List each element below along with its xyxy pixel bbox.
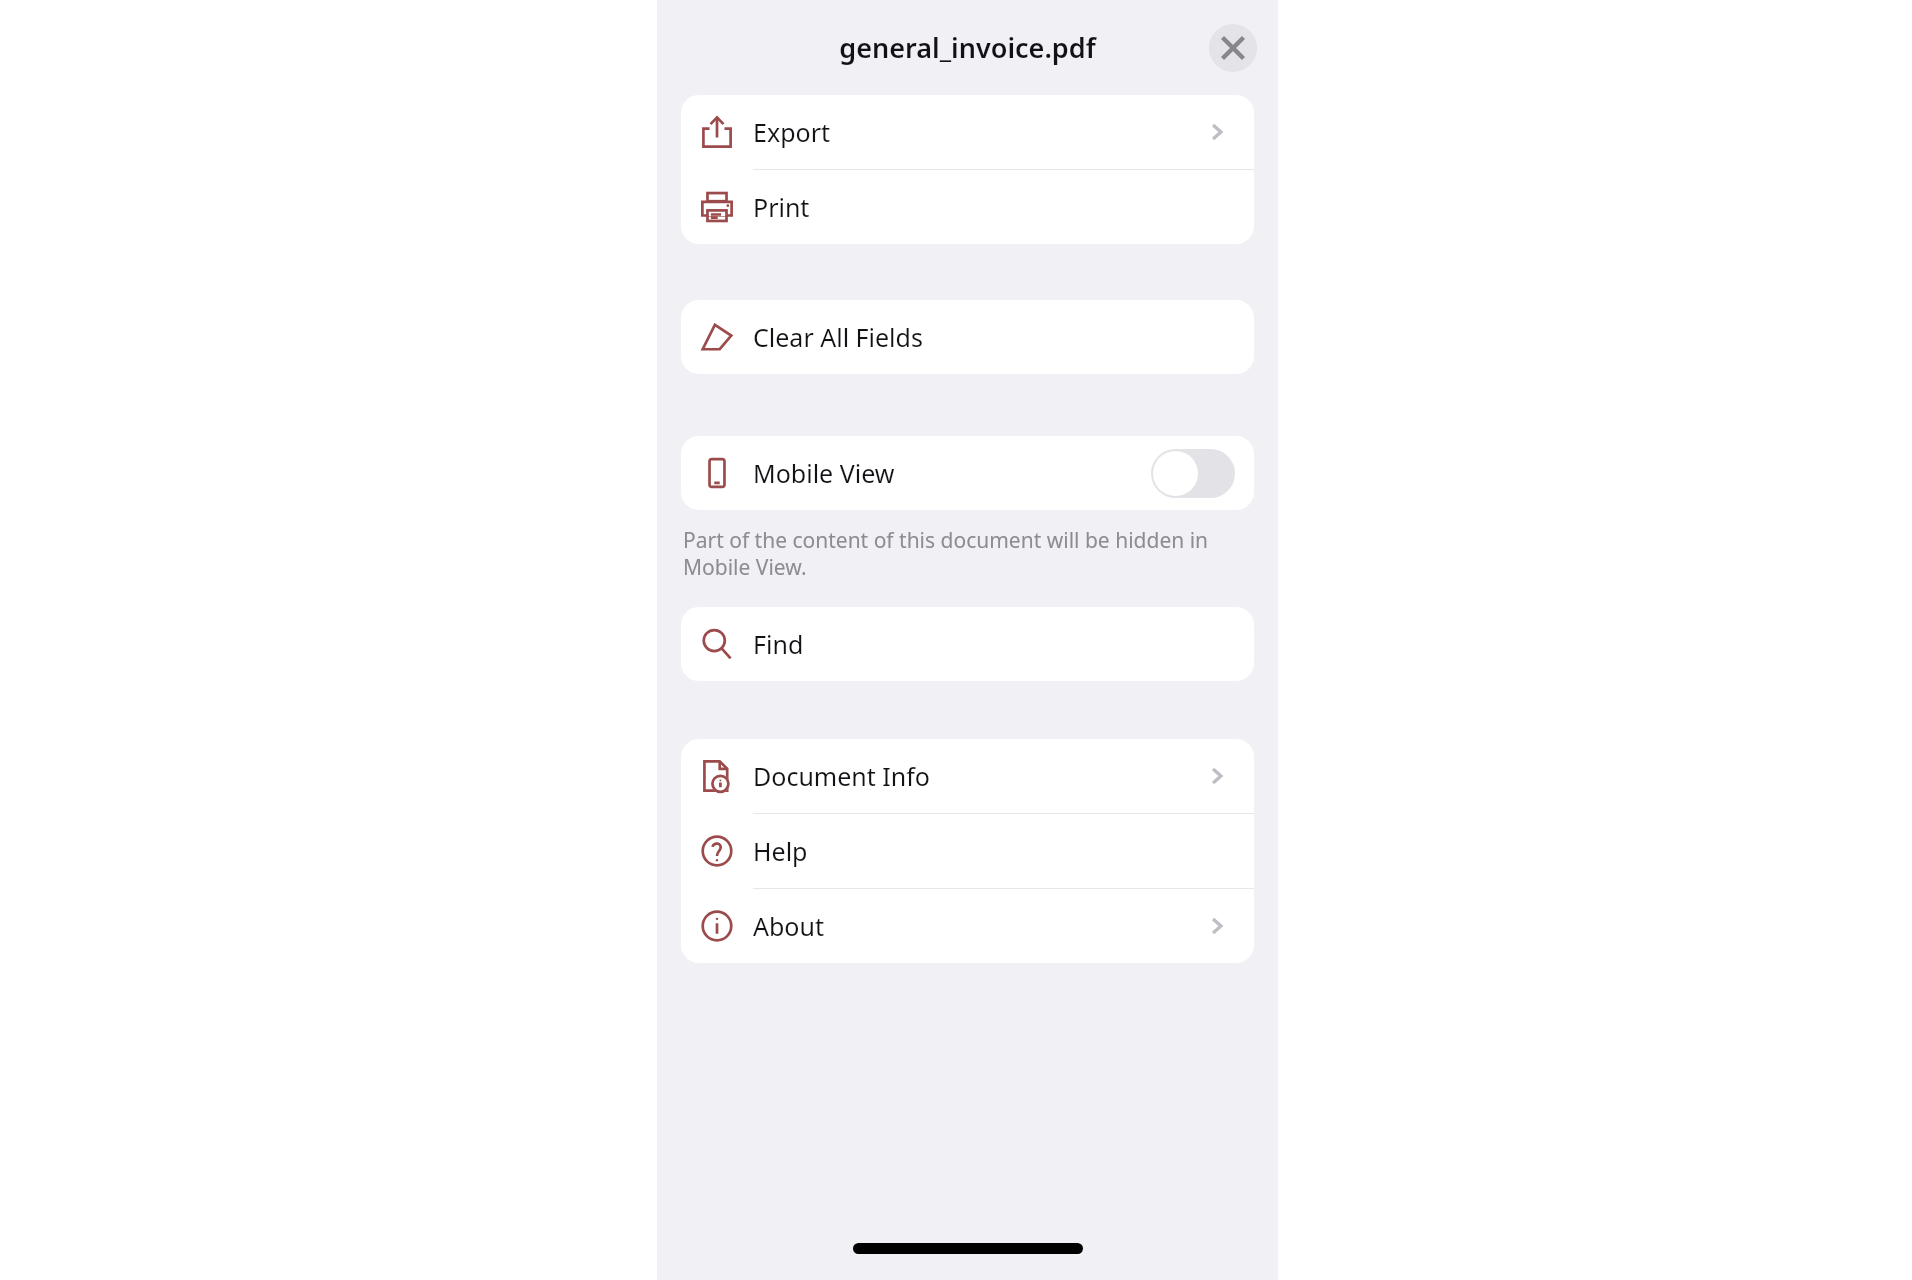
staticText: general_invoice.pdf [839,29,1096,66]
button[interactable]: Document Info [681,739,1254,813]
button[interactable]: Clear All Fields [681,300,1254,374]
staticText: Help [753,834,808,868]
staticText: About [753,909,824,943]
staticText: Print [753,190,810,224]
button[interactable]: About [681,889,1254,963]
button[interactable]: Mobile View [681,436,1254,510]
staticText: Document Info [753,759,930,793]
staticText: Clear All Fields [753,320,923,354]
staticText: Export [753,115,830,149]
button[interactable]: Export [681,95,1254,169]
button[interactable]: Help [681,814,1254,888]
button[interactable]: Mobile View toggle, off [1151,449,1235,498]
staticText: Mobile View [753,456,895,490]
button[interactable]: Print [681,170,1254,244]
staticText: Find [753,627,804,661]
button[interactable]: Find [681,607,1254,681]
staticText: Part of the content of this document wil… [683,526,1230,581]
button[interactable]: Close [1209,24,1257,72]
